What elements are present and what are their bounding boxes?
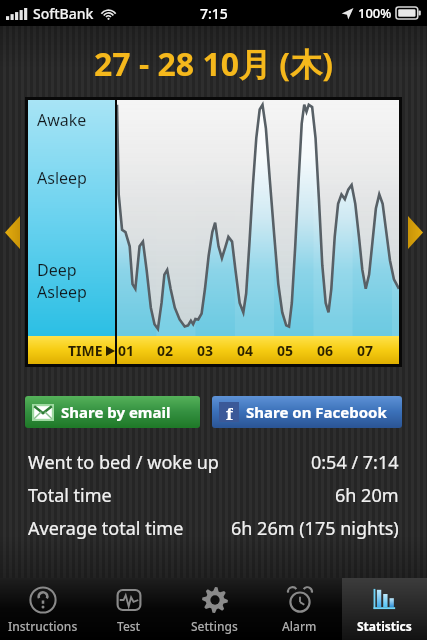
button[interactable]: Statistics	[342, 578, 427, 640]
staticText: Statistics	[357, 618, 412, 634]
staticText: 27 - 28 10月 (木)	[0, 42, 427, 86]
staticText: Test	[117, 618, 141, 634]
staticText: 6h 20m	[335, 483, 399, 508]
staticText: Instructions	[8, 618, 78, 634]
staticText: Alarm	[282, 618, 317, 634]
staticText: 02	[157, 341, 174, 360]
staticText: Asleep	[37, 167, 87, 189]
button[interactable]: Test	[86, 578, 172, 640]
staticText: Deep	[37, 259, 77, 281]
staticText: Share by email	[61, 402, 171, 422]
staticText: Settings	[191, 618, 238, 634]
button[interactable]: Awake	[25, 97, 402, 367]
staticText: Total time	[28, 483, 112, 508]
button[interactable]: Instructions	[0, 578, 86, 640]
staticText: 05	[277, 341, 294, 360]
staticText: 100%	[358, 4, 392, 22]
button[interactable]: Alarm	[257, 578, 342, 640]
staticText: 0:54 / 7:14	[311, 450, 399, 475]
staticText: f	[226, 402, 233, 422]
staticText: TIME	[68, 341, 103, 360]
button[interactable]: Next night	[404, 208, 426, 256]
staticText: Went to bed / woke up	[28, 450, 219, 475]
staticText: 7:15	[200, 4, 228, 23]
staticText: 01	[118, 341, 135, 360]
button[interactable]: f	[212, 396, 402, 428]
button[interactable]: Previous night	[1, 208, 23, 256]
staticText: 07	[357, 341, 374, 360]
button[interactable]: Share by email	[25, 396, 200, 428]
button[interactable]: Settings	[172, 578, 257, 640]
staticText: Asleep	[37, 281, 87, 303]
staticText: 04	[237, 341, 254, 360]
staticText: Share on Facebook	[246, 402, 387, 422]
staticText: 6h 26m (175 nights)	[231, 516, 399, 541]
staticText: 03	[197, 341, 214, 360]
staticText: Awake	[37, 109, 87, 131]
staticText: SoftBank	[33, 4, 94, 23]
staticText: Average total time	[28, 516, 184, 541]
staticText: 06	[317, 341, 334, 360]
